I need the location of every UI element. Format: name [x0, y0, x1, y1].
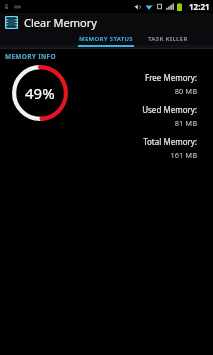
button[interactable]: MEMORY STATUS: [78, 32, 134, 45]
staticText: 81 MB: [174, 118, 197, 128]
staticText: 49%: [25, 83, 55, 103]
button[interactable]: App icon: [4, 15, 19, 30]
staticText: 80 MB: [174, 86, 197, 96]
staticText: MEMORY INFO: [5, 52, 56, 61]
staticText: Used Memory:: [142, 104, 197, 115]
staticText: Free Memory:: [144, 72, 197, 83]
staticText: 12:21: [189, 1, 210, 12]
staticText: TASK KILLER: [148, 35, 188, 43]
staticText: 161 MB: [170, 150, 197, 160]
staticText: Total Memory:: [143, 136, 197, 147]
staticText: Clear Memory: [24, 15, 97, 30]
staticText: MEMORY STATUS: [79, 35, 133, 43]
button[interactable]: TASK KILLER: [144, 32, 192, 45]
